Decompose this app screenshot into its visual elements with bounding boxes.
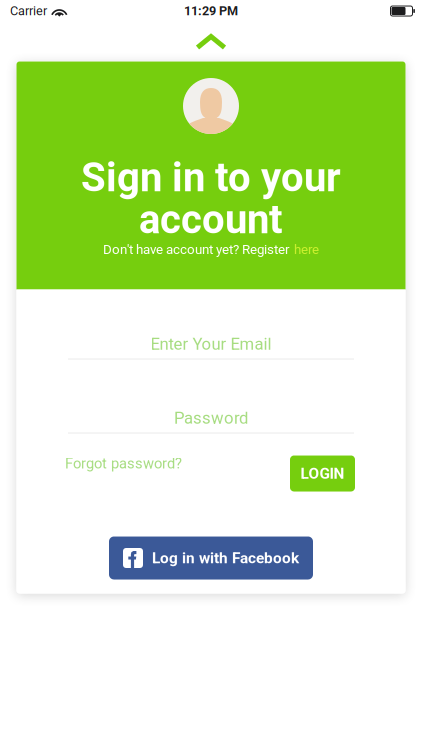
staticText: Don't have account yet? Register xyxy=(103,242,290,257)
staticText: Sign in to your xyxy=(81,154,341,201)
button[interactable]: Enter Your Email xyxy=(68,329,354,359)
staticText: Log in with Facebook xyxy=(152,549,299,567)
button[interactable]: here xyxy=(294,242,319,257)
staticText: Enter Your Email xyxy=(150,334,271,354)
button[interactable]: LOGIN xyxy=(290,455,355,491)
staticText: here xyxy=(294,242,319,257)
button[interactable]: Forgot password? xyxy=(65,452,215,474)
staticText: 11:29 PM xyxy=(184,4,238,18)
staticText: Password xyxy=(174,408,248,428)
staticText: account xyxy=(139,196,283,243)
button[interactable]: Collapse xyxy=(181,29,241,55)
button[interactable]: Log in with Facebook xyxy=(109,536,313,579)
staticText: Carrier xyxy=(10,4,47,18)
button[interactable]: Password xyxy=(68,403,354,433)
staticText: LOGIN xyxy=(300,464,344,482)
staticText: Forgot password? xyxy=(65,455,182,472)
